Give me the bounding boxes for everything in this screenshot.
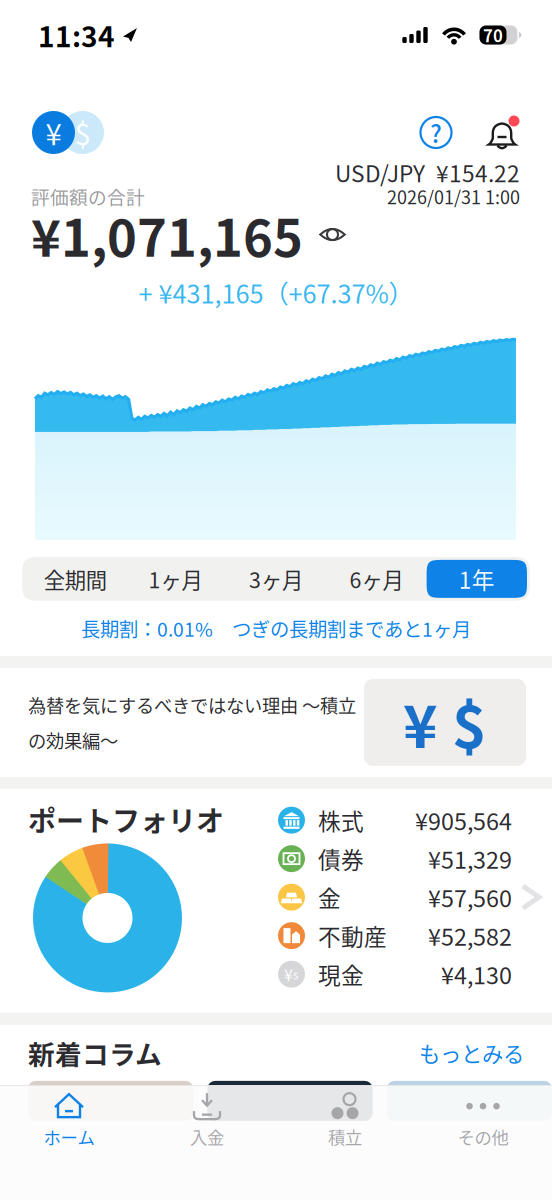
staticText: 1年 bbox=[459, 562, 495, 595]
staticText: USD/JPY bbox=[335, 156, 425, 189]
staticText: ホーム bbox=[43, 1124, 94, 1149]
staticText: その他 bbox=[457, 1124, 508, 1149]
button[interactable]: 積立 bbox=[276, 1095, 414, 1147]
staticText: 積立 bbox=[328, 1124, 362, 1149]
button[interactable]: ホーム bbox=[0, 1095, 138, 1147]
staticText: ¥1,071,165 bbox=[31, 198, 303, 271]
button[interactable]: 3ヶ月 bbox=[226, 560, 326, 598]
button[interactable]: 全期間 bbox=[25, 560, 125, 598]
staticText: s bbox=[293, 965, 299, 983]
button[interactable]: 1年 bbox=[427, 560, 527, 598]
button[interactable]: ポートフォリオ bbox=[0, 789, 552, 1013]
staticText: 6ヶ月 bbox=[349, 563, 403, 594]
button[interactable]: Currency toggle bbox=[32, 111, 104, 154]
button[interactable]: 6ヶ月 bbox=[326, 560, 427, 598]
staticText: ¥51,329 bbox=[428, 842, 512, 876]
staticText: ¥4,130 bbox=[441, 957, 512, 991]
staticText: 新着コラム bbox=[28, 1034, 162, 1072]
button[interactable]: 為替を気にするべきではない理由 〜積立 bbox=[0, 668, 552, 777]
staticText: 不動産 bbox=[318, 919, 387, 952]
staticText: $ bbox=[74, 111, 90, 154]
staticText: ¥ bbox=[284, 963, 293, 986]
staticText: 金 bbox=[318, 881, 341, 913]
staticText: 評価額の合計 bbox=[31, 183, 145, 210]
button[interactable]: Help bbox=[418, 114, 454, 150]
staticText: ¥154.22 bbox=[436, 156, 520, 189]
staticText: + ¥431,165（+67.37%） bbox=[138, 274, 413, 311]
button[interactable]: その他 bbox=[414, 1095, 552, 1147]
staticText: 3ヶ月 bbox=[249, 563, 303, 594]
button[interactable]: もっとみる bbox=[419, 1037, 524, 1068]
staticText: ¥ bbox=[403, 680, 438, 765]
button[interactable]: 長期割：0.01% つぎの長期割まであと1ヶ月 bbox=[81, 601, 471, 656]
staticText: $ bbox=[452, 680, 487, 765]
button[interactable]: Notifications bbox=[484, 113, 522, 151]
staticText: 1ヶ月 bbox=[149, 563, 203, 594]
button[interactable]: 入金 bbox=[138, 1095, 276, 1147]
staticText: ¥52,582 bbox=[428, 919, 512, 953]
staticText: ? bbox=[430, 115, 442, 150]
staticText: もっとみる bbox=[419, 1037, 524, 1068]
staticText: 70 bbox=[483, 23, 503, 47]
staticText: ¥57,560 bbox=[428, 880, 512, 914]
staticText: 長期割：0.01% つぎの長期割まであと1ヶ月 bbox=[81, 614, 471, 642]
staticText: ポートフォリオ bbox=[28, 799, 224, 839]
button[interactable]: 1ヶ月 bbox=[125, 560, 226, 598]
staticText: 為替を気にするべきではない理由 〜積立 bbox=[28, 691, 356, 718]
staticText: 債券 bbox=[318, 842, 364, 875]
staticText: の効果編〜 bbox=[28, 727, 118, 753]
staticText: 株式 bbox=[318, 804, 364, 836]
staticText: ¥ bbox=[45, 111, 61, 154]
staticText: 入金 bbox=[190, 1124, 224, 1149]
staticText: 11:34 bbox=[38, 15, 115, 55]
staticText: 2026/01/31 1:00 bbox=[387, 183, 520, 209]
staticText: ¥905,564 bbox=[415, 803, 512, 837]
staticText: 全期間 bbox=[44, 563, 107, 594]
staticText: 現金 bbox=[318, 958, 364, 990]
